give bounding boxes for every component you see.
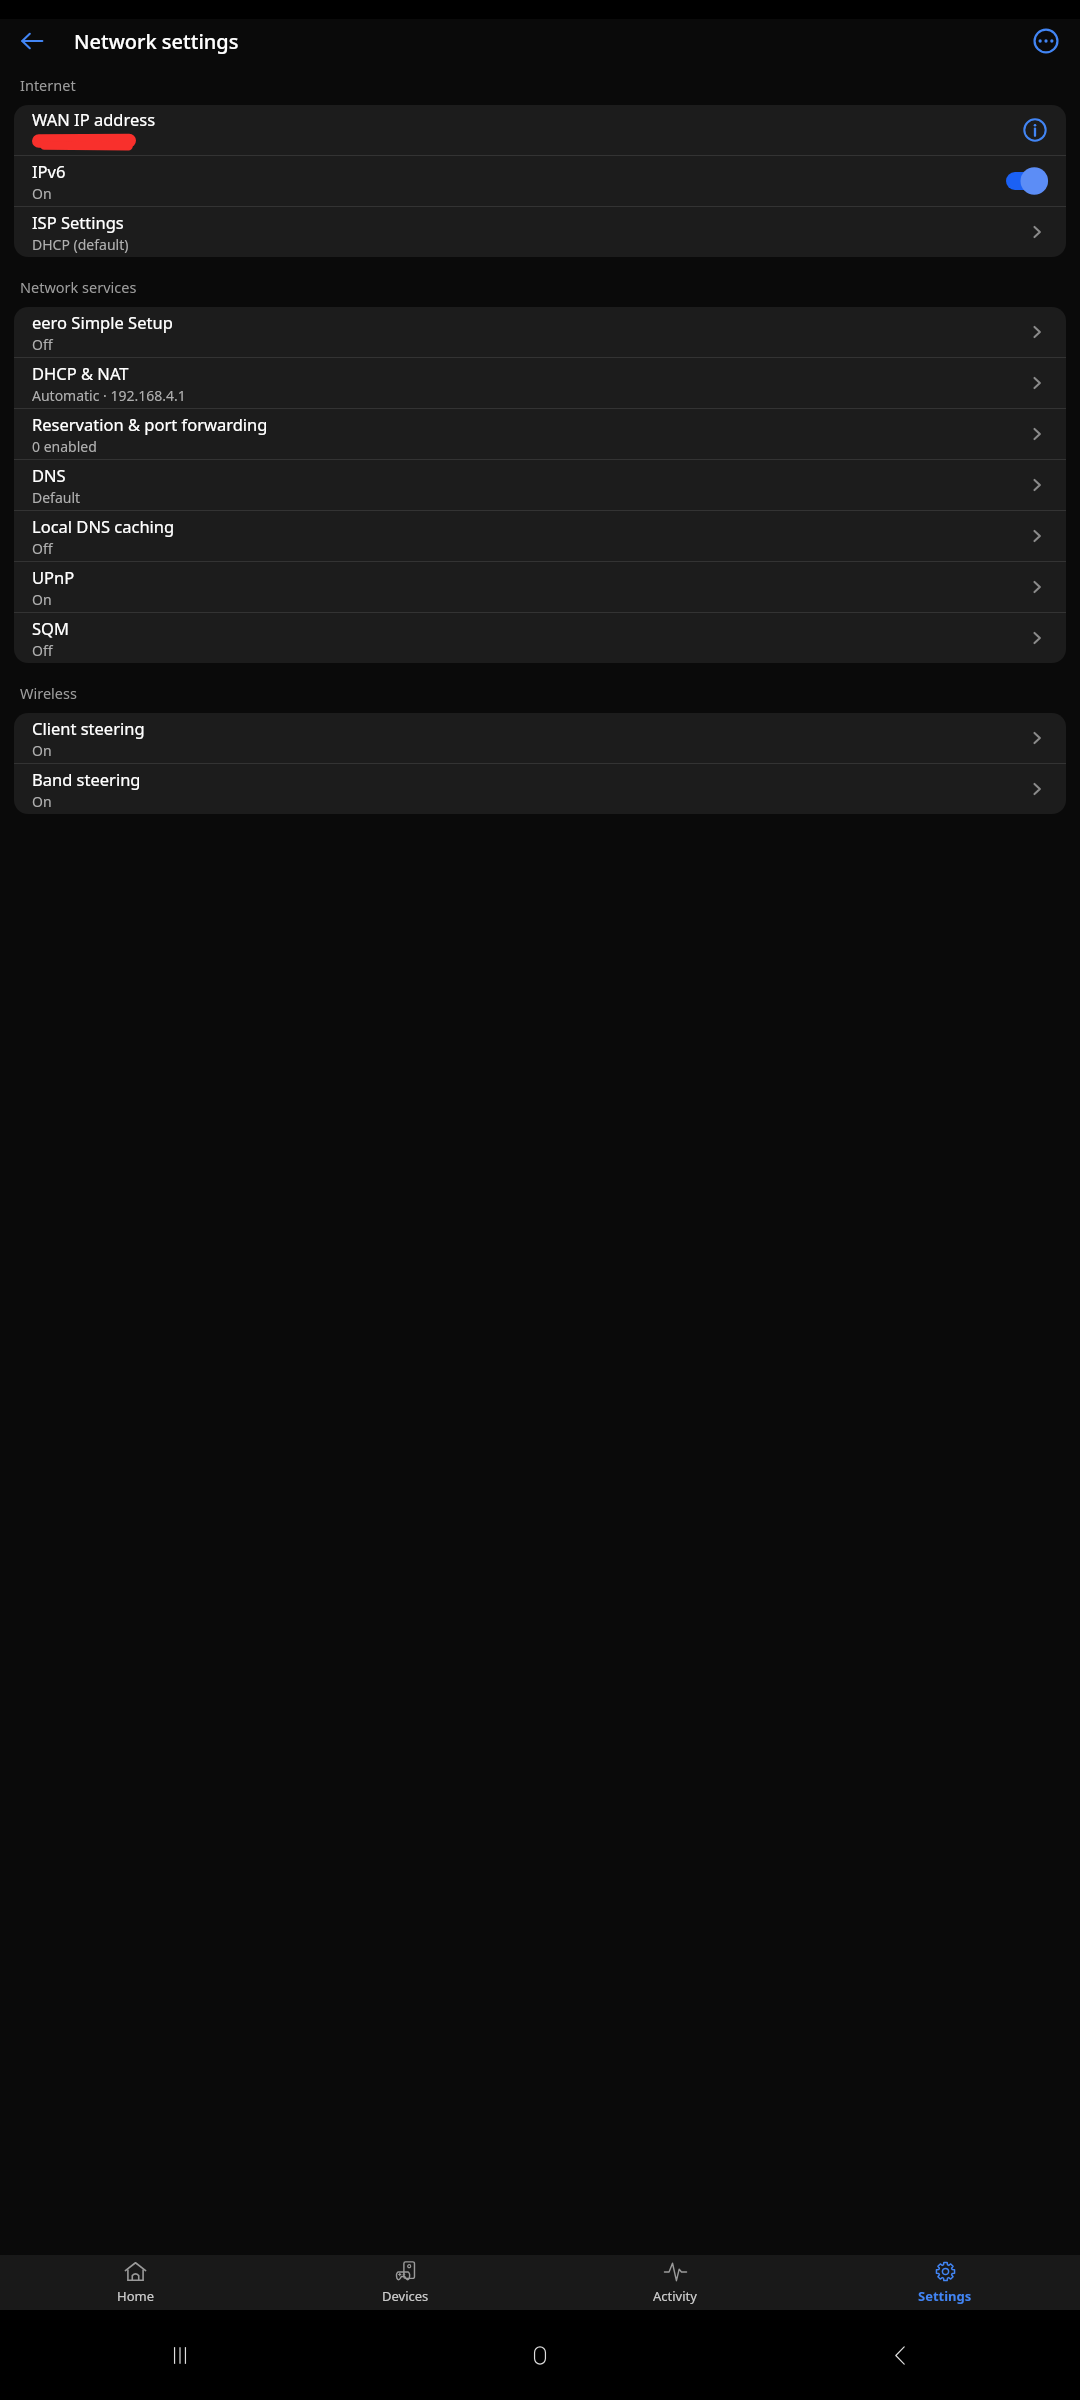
staticText: Reservation & port forwarding [32,413,268,435]
staticText: Activity [653,2287,697,2305]
staticText: On [32,590,52,609]
staticText: On [32,741,52,760]
staticText: Band steering [32,768,141,790]
staticText: Off [32,335,53,354]
staticText: DHCP (default) [32,235,129,254]
staticText: SQM [32,617,69,639]
button[interactable]: IPv6 [14,156,1066,206]
button[interactable]: DNS [14,460,1066,510]
button[interactable]: Recent apps [156,2331,204,2379]
button[interactable]: Home [516,2331,564,2379]
button[interactable]: Settings [810,2255,1080,2310]
staticText: DNS [32,464,66,486]
staticText: DHCP & NAT [32,362,129,384]
button[interactable]: Devices [270,2255,540,2310]
staticText: Settings [918,2287,972,2305]
staticText: WAN IP address [32,108,156,130]
button[interactable]: Home [0,2255,270,2310]
button[interactable]: ISP Settings [14,207,1066,257]
staticText: ISP Settings [32,211,124,233]
button[interactable]: Back [8,19,56,63]
button[interactable]: SQM [14,613,1066,663]
staticText: Off [32,641,53,660]
staticText: On [32,184,52,203]
button[interactable]: Reservation & port forwarding [14,409,1066,459]
button[interactable]: Back [876,2331,924,2379]
button[interactable]: Band steering [14,764,1066,814]
button[interactable]: UPnP [14,562,1066,612]
staticText: Default [32,488,81,507]
staticText: Wireless [20,683,77,703]
button[interactable]: Local DNS caching [14,511,1066,561]
staticText: IPv6 [32,160,66,182]
staticText: 0 enabled [32,437,97,456]
staticText: UPnP [32,566,75,588]
staticText: Internet [20,75,76,95]
staticText: Home [117,2287,154,2305]
staticText: eero Simple Setup [32,311,173,333]
staticText: Network services [20,277,137,297]
staticText: Off [32,539,53,558]
button[interactable]: WAN IP address [14,105,1066,155]
button[interactable]: IPv6 toggle [1006,166,1052,196]
button[interactable]: Activity [540,2255,810,2310]
button[interactable]: eero Simple Setup [14,307,1066,357]
staticText: Local DNS caching [32,515,175,537]
staticText: Network settings [74,28,239,55]
staticText: Devices [382,2287,429,2305]
button[interactable]: Client steering [14,713,1066,763]
button[interactable]: Information about WAN IP address [1018,113,1052,147]
staticText: Automatic · 192.168.4.1 [32,386,186,405]
staticText: On [32,792,52,811]
button[interactable]: More options [1024,19,1068,63]
staticText: Client steering [32,717,145,739]
button[interactable]: DHCP & NAT [14,358,1066,408]
